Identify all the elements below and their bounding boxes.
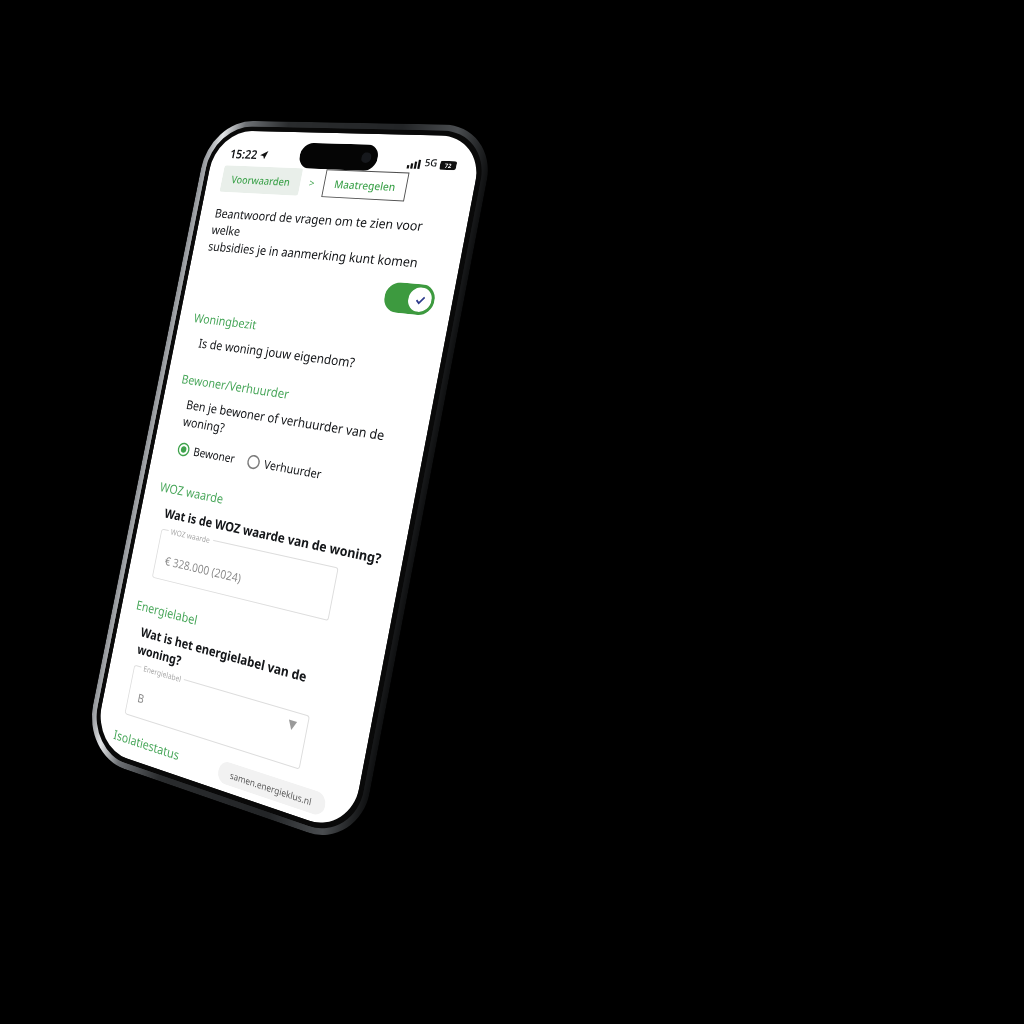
staticText: Maatregelen bbox=[333, 176, 397, 194]
staticText: Is de woning jouw eigendom? bbox=[197, 334, 357, 371]
button[interactable]: Energielabel bbox=[124, 664, 310, 770]
staticText: Bewoner/Verhuurder bbox=[180, 370, 291, 403]
staticText: Energielabel bbox=[143, 662, 182, 684]
staticText: B bbox=[136, 689, 146, 706]
button[interactable]: WOZ waarde bbox=[152, 529, 339, 621]
staticText: Bewoner bbox=[192, 443, 237, 466]
staticText: Beantwoord de vragen om te zien voor wel… bbox=[207, 204, 450, 273]
staticText: Voorwaarden bbox=[230, 172, 292, 189]
staticText: 5G bbox=[424, 155, 439, 170]
staticText: Wat is het energielabel van de woning? bbox=[136, 623, 361, 720]
staticText: samen.energieklus.nl bbox=[229, 768, 313, 808]
staticText: Verhuurder bbox=[263, 456, 323, 482]
staticText: Woningbezit bbox=[192, 309, 258, 333]
staticText: Energielabel bbox=[135, 596, 199, 629]
staticText: 15:22 bbox=[229, 145, 259, 163]
staticText: 72 bbox=[444, 162, 452, 170]
staticText: > bbox=[308, 175, 317, 190]
button[interactable]: Verhuurder bbox=[245, 451, 323, 484]
button[interactable]: Bewoner bbox=[176, 439, 237, 468]
button[interactable]: Toggle bbox=[382, 281, 437, 316]
staticText: WOZ waarde bbox=[170, 526, 212, 545]
staticText: Isolatiestatus bbox=[112, 725, 181, 764]
button[interactable]: Voorwaarden bbox=[219, 165, 303, 196]
button[interactable]: Maatregelen bbox=[321, 169, 409, 201]
staticText: € 328.000 (2024) bbox=[164, 552, 243, 586]
staticText: WOZ waarde bbox=[159, 478, 226, 508]
staticText: Ben je bewoner of verhuurder van de woni… bbox=[181, 396, 410, 467]
staticText: Wat is de WOZ waarde van de woning? bbox=[163, 504, 384, 568]
